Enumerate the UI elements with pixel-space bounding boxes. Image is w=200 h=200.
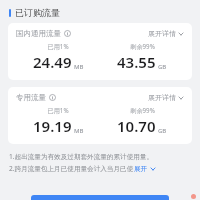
staticText: 展开详情 <box>148 93 176 102</box>
button[interactable]: 通知 <box>191 194 196 199</box>
other: 说明 <box>49 94 56 101</box>
staticText: GB <box>158 127 167 135</box>
staticText: 国内通用流量 <box>16 29 61 38</box>
staticText: MB <box>74 63 84 71</box>
button[interactable]: 专用流量 <box>8 87 192 144</box>
staticText: 2.跨月流量包上月已使用量会计入当月已使 <box>9 164 134 173</box>
other: 说明 <box>64 30 71 37</box>
staticText: 已用1% <box>47 106 69 114</box>
staticText: 已用1% <box>47 42 69 50</box>
staticText: 展开详情 <box>148 29 176 38</box>
staticText: 24.49 <box>33 52 72 72</box>
staticText: 剩余99% <box>130 106 155 114</box>
button[interactable]: 展开 <box>134 165 156 173</box>
staticText: 展开 <box>134 165 148 173</box>
button[interactable]: 国内通用流量 <box>8 23 192 80</box>
staticText: 剩余99% <box>130 42 155 50</box>
staticText: 43.55 <box>117 52 156 72</box>
staticText: 已订购流量 <box>15 7 60 18</box>
staticText: GB <box>158 63 167 71</box>
button[interactable]: 展开详情 <box>148 29 184 38</box>
button[interactable]: 立即办理 <box>31 195 169 200</box>
button[interactable]: 展开详情 <box>148 93 184 102</box>
staticText: 10.70 <box>117 116 156 136</box>
staticText: 1.超出流量为有效及过期套外流量的累计使用量。 <box>9 152 154 161</box>
staticText: 19.19 <box>33 116 72 136</box>
staticText: 专用流量 <box>16 93 46 102</box>
staticText: MB <box>74 127 84 135</box>
